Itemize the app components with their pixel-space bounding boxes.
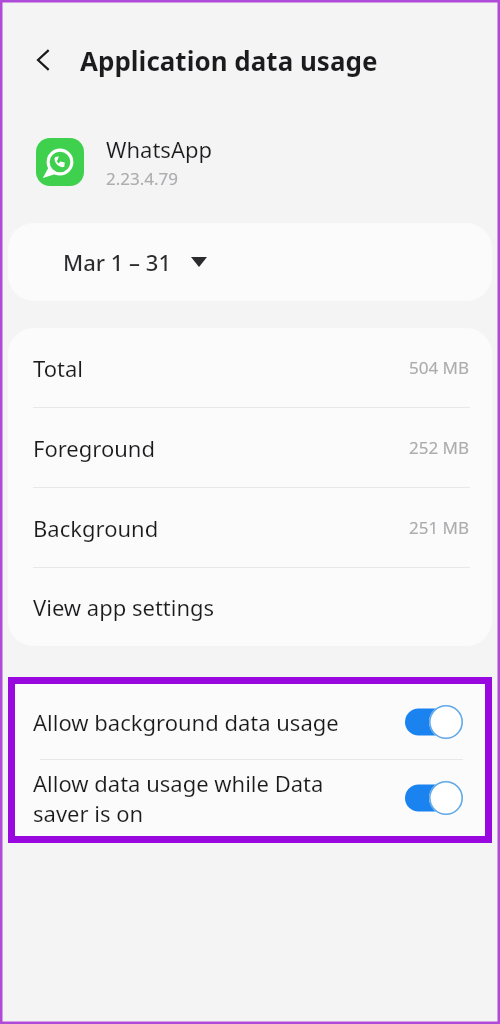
staticText: saver is on bbox=[33, 798, 144, 828]
staticText: Background bbox=[33, 513, 159, 543]
staticText: 251 MB bbox=[408, 516, 469, 539]
staticText: Allow background data usage bbox=[33, 707, 339, 737]
staticText: Allow data usage while Data bbox=[33, 768, 324, 798]
staticText: View app settings bbox=[33, 592, 215, 622]
staticText: Total bbox=[33, 353, 83, 383]
staticText: 2.23.4.79 bbox=[106, 167, 179, 190]
button[interactable]: Foreground bbox=[8, 408, 492, 487]
staticText: 504 MB bbox=[408, 356, 469, 379]
staticText: WhatsApp bbox=[106, 134, 212, 164]
button[interactable]: Allow background data usage bbox=[15, 684, 485, 759]
staticText: Application data usage bbox=[80, 43, 378, 78]
staticText: Mar 1 – 31 bbox=[63, 247, 171, 277]
button[interactable]: Total bbox=[8, 328, 492, 407]
staticText: 252 MB bbox=[408, 436, 469, 459]
button[interactable]: Back bbox=[22, 38, 66, 82]
button[interactable]: Allow data usage while Data bbox=[15, 760, 485, 836]
button[interactable]: Mar 1 – 31 bbox=[8, 223, 492, 301]
button[interactable]: Toggle on bbox=[405, 781, 463, 815]
button[interactable]: View app settings bbox=[8, 568, 492, 646]
button[interactable]: Background bbox=[8, 488, 492, 567]
button[interactable]: Toggle on bbox=[405, 705, 463, 739]
staticText: Foreground bbox=[33, 433, 155, 463]
